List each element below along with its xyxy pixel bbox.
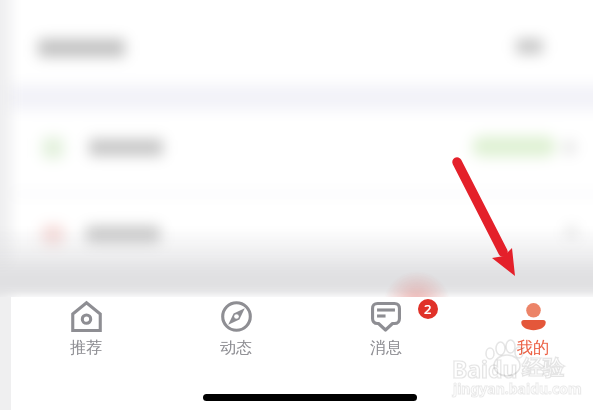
button[interactable]: Discover [161,300,311,358]
other: Profile [518,301,549,332]
staticText: 动态 [220,338,252,358]
other: Messages [370,300,402,332]
staticText: 推荐 [70,338,102,358]
staticText: 2 [424,300,432,318]
button[interactable]: Profile [461,300,593,358]
staticText: 消息 [370,338,402,358]
staticText: 我的 [517,338,549,358]
button[interactable]: Home [11,300,161,358]
other: Home [71,301,102,332]
button[interactable]: Messages [311,300,461,358]
other: Discover [221,301,252,332]
